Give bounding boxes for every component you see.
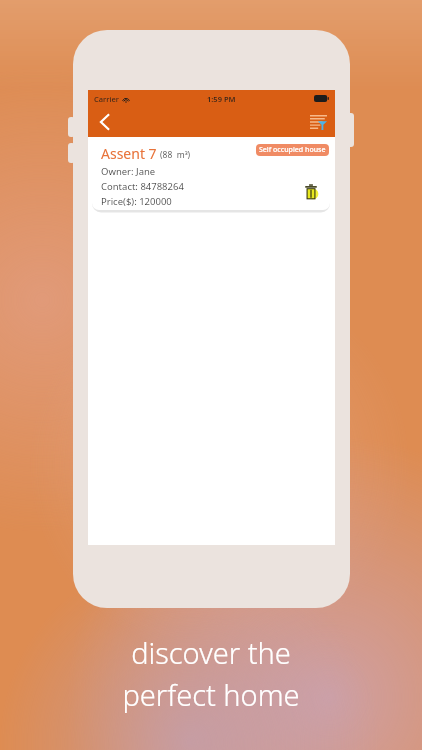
staticText: (88 m³) xyxy=(160,149,191,161)
button[interactable]: Filter xyxy=(305,109,331,135)
button[interactable]: Back xyxy=(91,109,117,135)
staticText: 1:59 PM xyxy=(207,94,236,104)
staticText: discover the xyxy=(131,633,291,672)
staticText: Owner: Jane xyxy=(101,165,156,178)
staticText: perfect home xyxy=(122,675,300,714)
button[interactable]: Assent 7 xyxy=(92,139,330,210)
staticText: Self occupied house xyxy=(259,145,326,155)
staticText: Price($): 120000 xyxy=(101,195,172,208)
staticText: Assent 7 xyxy=(101,144,157,163)
staticText: Carrier xyxy=(94,94,119,104)
button[interactable]: Delete xyxy=(301,182,321,202)
staticText: Contact: 84788264 xyxy=(101,180,184,193)
